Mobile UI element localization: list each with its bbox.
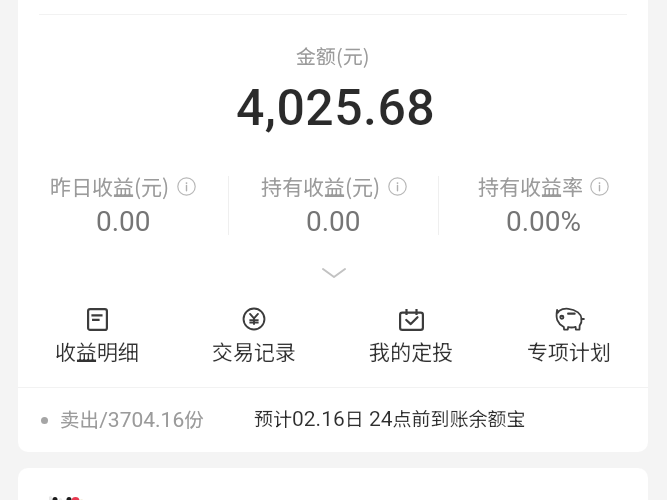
staticText: 0.00% <box>506 205 582 234</box>
button[interactable]: 持有收益率 <box>439 166 648 234</box>
button[interactable]: 持有收益(元) <box>229 166 438 234</box>
button[interactable]: 专项计划 <box>490 296 648 372</box>
button[interactable]: Expand <box>312 265 356 281</box>
button[interactable]: 昨日收益(元) <box>18 166 228 234</box>
staticText: 卖出/3704.16份 <box>60 404 204 432</box>
staticText: 收益明细 <box>55 336 139 366</box>
staticText: 我的定投 <box>369 336 453 366</box>
staticText: 4,025.68 <box>236 79 436 138</box>
staticText: 持有收益率 <box>478 171 583 201</box>
button[interactable]: 卖出/3704.16份 <box>18 401 648 435</box>
staticText: 交易记录 <box>212 336 296 366</box>
staticText: 专项计划 <box>527 336 611 366</box>
staticText: 金额(元) <box>296 41 370 70</box>
staticText: 持有收益(元) <box>261 171 381 201</box>
button[interactable]: 交易记录 <box>175 296 332 372</box>
button[interactable]: 收益明细 <box>18 296 175 372</box>
staticText: 昨日收益(元) <box>50 171 170 201</box>
staticText: 预计02.16日 24点前到账余额宝 <box>254 404 526 432</box>
button[interactable]: 我的定投 <box>332 296 490 372</box>
staticText: 0.00 <box>306 205 361 234</box>
staticText: 0.00 <box>96 205 151 234</box>
